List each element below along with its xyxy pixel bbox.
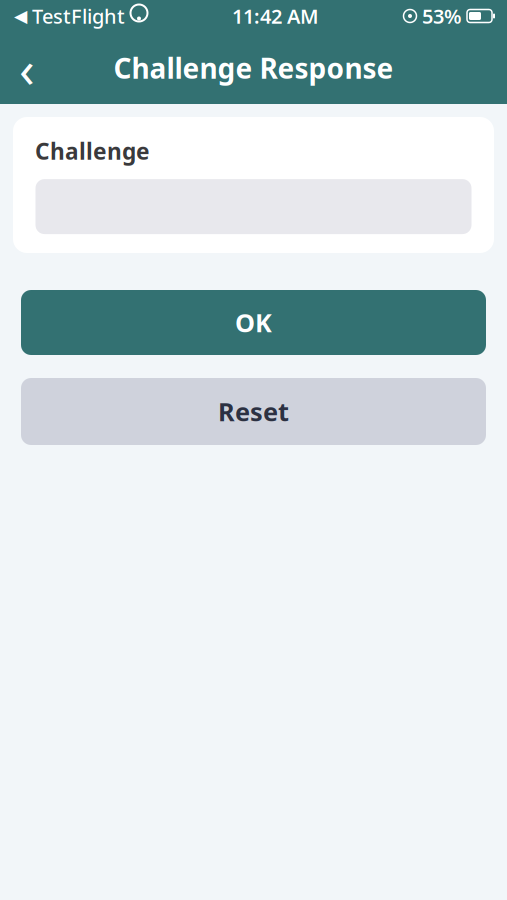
staticText: ‹ [19, 34, 35, 102]
button[interactable]: OK [21, 290, 486, 355]
staticText: Challenge Response [113, 49, 393, 87]
button[interactable]: Back [0, 41, 54, 95]
button[interactable]: Reset [21, 378, 486, 445]
staticText: 11:42 AM [232, 3, 319, 29]
staticText: 53% [422, 3, 462, 29]
staticText: Challenge [35, 136, 150, 166]
staticText: TestFlight [32, 3, 125, 29]
staticText: ◀ [14, 6, 27, 26]
staticText: OK [235, 306, 272, 339]
staticText: Reset [218, 395, 289, 428]
